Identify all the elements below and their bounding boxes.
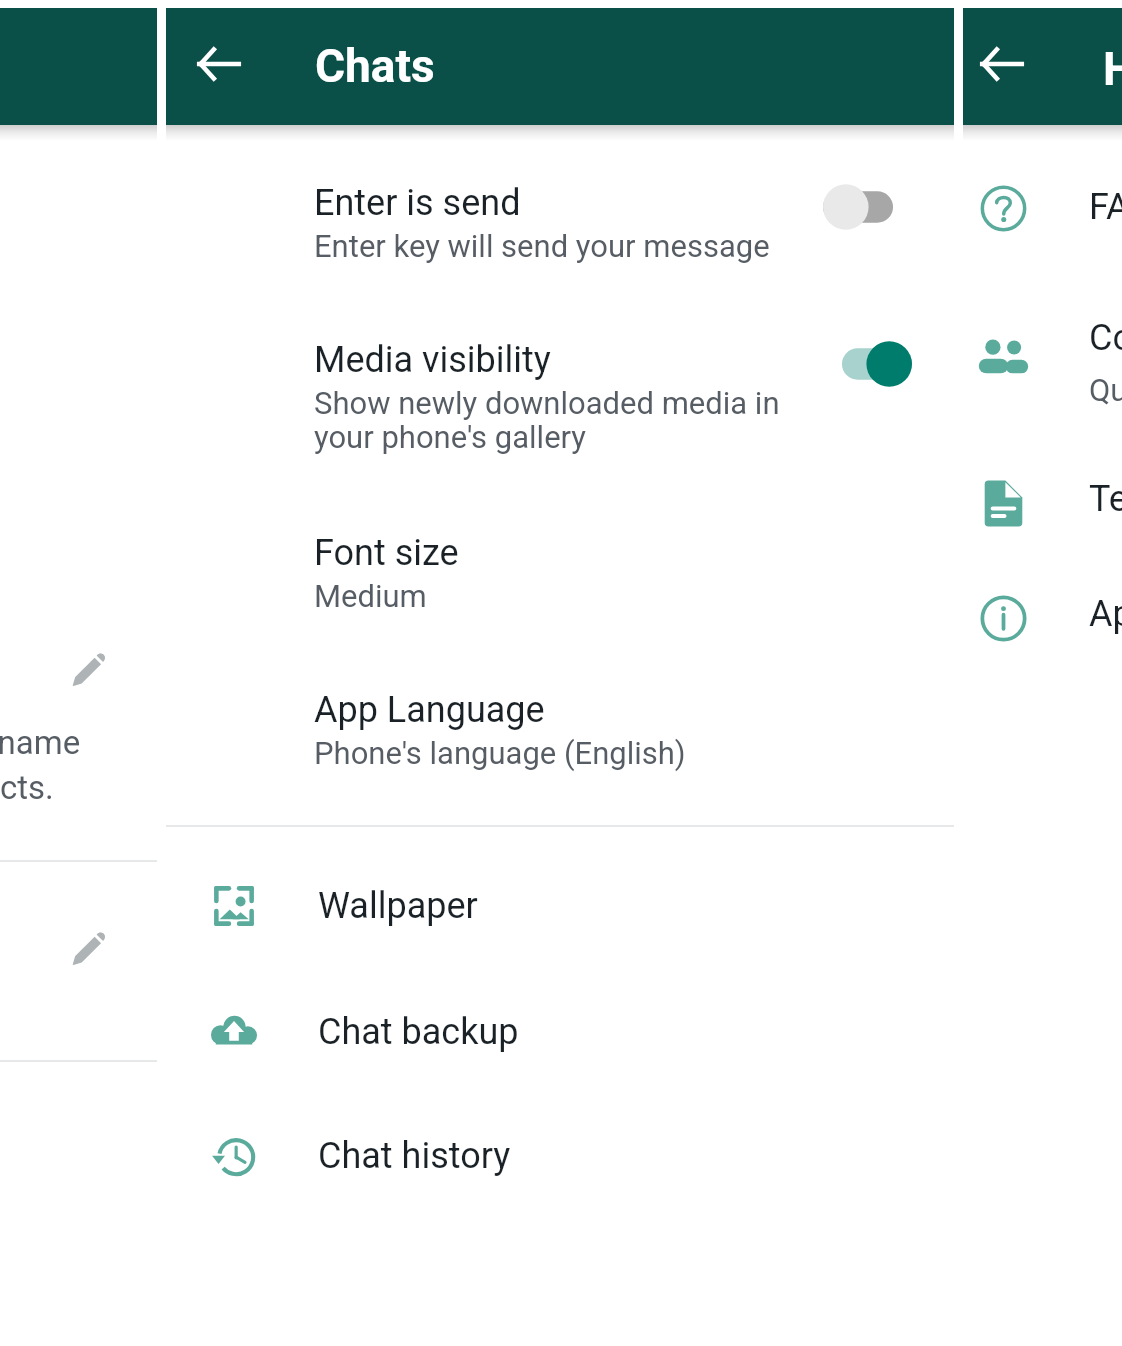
staticText: Enter is send	[314, 182, 521, 224]
staticText: Font size	[314, 532, 459, 574]
staticText: Chats	[315, 39, 435, 93]
staticText: Show newly downloaded media in your phon…	[314, 387, 780, 455]
staticText: Help	[1103, 42, 1122, 96]
button[interactable]: Media visibility	[166, 339, 954, 469]
staticText: Media visibility	[314, 339, 551, 381]
button[interactable]: Enter is send	[823, 178, 912, 236]
staticText: Phone's language (English)	[314, 737, 686, 771]
staticText: App info	[1089, 593, 1122, 635]
button[interactable]: Back	[976, 38, 1028, 90]
button[interactable]: Edit about	[66, 927, 109, 970]
button[interactable]: Wallpaper	[166, 845, 954, 967]
button[interactable]: Back	[193, 38, 245, 90]
staticText: Questions? Need help?	[1089, 374, 1122, 408]
button[interactable]: Chat backup	[166, 971, 954, 1093]
staticText: Chat history	[318, 1135, 511, 1177]
staticText: Chat backup	[318, 1011, 519, 1053]
staticText: Wallpaper	[318, 885, 478, 927]
button[interactable]: App info	[963, 585, 1122, 685]
staticText: Terms and Privacy Policy	[1089, 478, 1122, 520]
button[interactable]: Edit name	[66, 648, 109, 691]
staticText: Enter key will send your message	[314, 230, 770, 264]
button[interactable]: Contact us	[963, 322, 1122, 422]
staticText: Contact us	[1089, 317, 1122, 359]
button[interactable]: Font size	[166, 507, 954, 637]
button[interactable]: Chat history	[166, 1095, 954, 1217]
staticText: App Language	[314, 689, 545, 731]
staticText: ur name	[0, 727, 81, 761]
button[interactable]: FAQ	[963, 175, 1122, 275]
staticText: Medium	[314, 580, 427, 614]
staticText: ntacts.	[0, 772, 54, 806]
staticText: FAQ	[1089, 186, 1122, 228]
button[interactable]: Terms and Privacy Policy	[963, 470, 1122, 570]
button[interactable]: App Language	[166, 664, 954, 794]
button[interactable]: Media visibility	[823, 335, 912, 393]
button[interactable]: Enter is send	[166, 182, 954, 312]
